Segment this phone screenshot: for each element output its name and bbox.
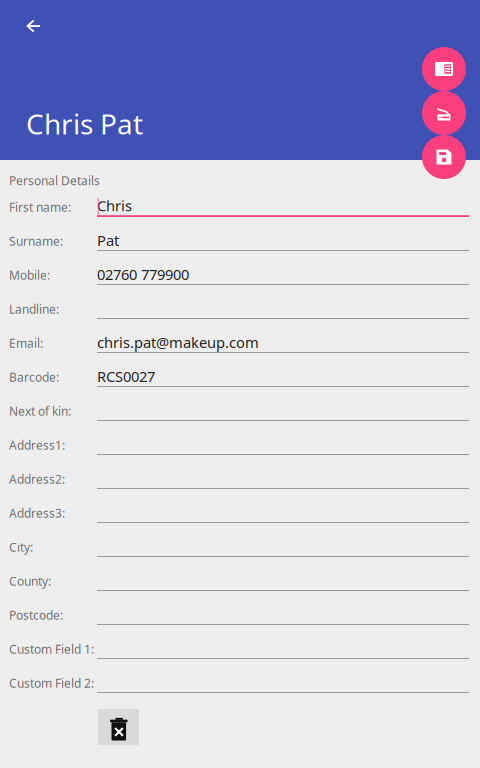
- staticText: chris.pat@makeup.com: [97, 332, 259, 352]
- staticText: First name:: [9, 199, 71, 215]
- button[interactable]: Address2:: [0, 462, 480, 496]
- staticText: RCS0027: [97, 366, 155, 386]
- button[interactable]: Mobile:: [0, 258, 480, 292]
- staticText: Surname:: [9, 233, 63, 249]
- button[interactable]: Landline:: [0, 292, 480, 326]
- button[interactable]: Address1:: [0, 428, 480, 462]
- button[interactable]: Address3:: [0, 496, 480, 530]
- staticText: County:: [9, 573, 51, 589]
- staticText: Landline:: [9, 301, 59, 317]
- staticText: Chris Pat: [26, 105, 143, 142]
- button[interactable]: Next of kin:: [0, 394, 480, 428]
- staticText: Next of kin:: [9, 403, 71, 419]
- staticText: Mobile:: [9, 267, 50, 283]
- button[interactable]: Surname:: [0, 224, 480, 258]
- staticText: Email:: [9, 335, 43, 351]
- staticText: Barcode:: [9, 369, 59, 385]
- button[interactable]: Save: [422, 135, 466, 179]
- button[interactable]: Barcode:: [0, 360, 480, 394]
- button[interactable]: Notes: [422, 47, 466, 91]
- staticText: Custom Field 1:: [9, 641, 94, 657]
- staticText: Chris: [97, 196, 132, 215]
- staticText: Address2:: [9, 471, 65, 487]
- button[interactable]: Email:: [0, 326, 480, 360]
- button[interactable]: First name:: [0, 190, 480, 224]
- button[interactable]: City:: [0, 530, 480, 564]
- staticText: Pat: [97, 230, 119, 250]
- button[interactable]: Custom Field 1:: [0, 632, 480, 666]
- staticText: Custom Field 2:: [9, 675, 94, 691]
- button[interactable]: Scan barcode: [422, 91, 466, 135]
- button[interactable]: Back: [9, 2, 57, 50]
- staticText: Personal Details: [9, 173, 100, 188]
- button[interactable]: Postcode:: [0, 598, 480, 632]
- staticText: Postcode:: [9, 607, 63, 623]
- staticText: Address3:: [9, 505, 65, 521]
- button[interactable]: Custom Field 2:: [0, 666, 480, 700]
- staticText: City:: [9, 539, 33, 555]
- button[interactable]: Delete contact: [98, 706, 139, 746]
- button[interactable]: County:: [0, 564, 480, 598]
- staticText: Address1:: [9, 437, 65, 453]
- staticText: 02760 779900: [97, 264, 189, 284]
